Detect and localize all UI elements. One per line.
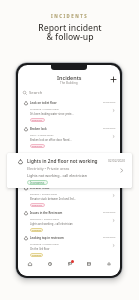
staticText: Elevator stuck between 2nd and 3rd… — [30, 197, 76, 201]
button[interactable]: Home — [20, 261, 39, 272]
staticText: Broken lock on office door. Need… — [30, 138, 72, 142]
staticText: Lights in 2nd floor not working — [30, 158, 74, 162]
staticText: 02/02/2020 — [103, 127, 116, 130]
staticText: 02/02/2020 — [103, 186, 116, 189]
staticText: Electricity • Private areas — [27, 166, 70, 171]
button[interactable]: Issues in the Restroom — [18, 211, 120, 235]
staticText: Reported — [32, 145, 43, 148]
staticText: Search — [29, 90, 43, 96]
staticText: Leak on toilet floor — [30, 101, 57, 105]
staticText: Door • Private areas — [30, 133, 54, 136]
staticText: Reported — [32, 204, 43, 207]
button[interactable]: Leak on toilet floor — [18, 101, 120, 125]
staticText: Leaking tap in restroom — [30, 236, 64, 240]
staticText: Restroom • Private areas — [30, 217, 59, 220]
staticText: Issues in the Restroom — [30, 211, 63, 215]
staticText: Incidents — [57, 74, 82, 81]
staticText: 02/02/2020 — [103, 236, 116, 239]
staticText: Reported — [32, 119, 43, 122]
staticText: The Building — [60, 81, 78, 85]
staticText: Lights not working - call electrician — [30, 169, 73, 173]
button[interactable]: Broken lock — [18, 127, 120, 151]
staticText: Plumbing • Private areas — [30, 107, 59, 110]
staticText: In progress — [32, 176, 45, 179]
staticText: 02/02/2020 — [103, 211, 116, 214]
staticText: 02/02/2020 — [103, 101, 116, 104]
staticText: INCIDENTS — [51, 13, 88, 19]
staticText: In progress — [30, 181, 45, 185]
staticText: Lights not working - call electrician — [27, 173, 87, 178]
staticText: Lights in 2nd floor not working — [27, 158, 98, 164]
button[interactable]: Elevator issue — [18, 186, 120, 210]
button[interactable]: Lights in 2nd floor not working — [7, 153, 132, 188]
staticText: Report incident & follow-up — [38, 22, 102, 43]
button[interactable]: Leaking tap in restroom — [18, 236, 120, 260]
staticText: 02/02/2020 — [103, 158, 116, 161]
button[interactable]: Notifications — [99, 261, 118, 272]
staticText: On the 3rd floor — [30, 247, 50, 251]
button[interactable]: Messages — [79, 261, 98, 272]
staticText: Broken lock — [30, 127, 47, 131]
button[interactable]: Add incident — [108, 74, 119, 85]
staticText: 02/02/2020 — [108, 159, 125, 163]
staticText: Pending — [32, 229, 41, 232]
staticText: Elevator issue — [30, 186, 50, 190]
button[interactable]: Activity — [40, 261, 59, 272]
staticText: Elevator • Private areas — [30, 192, 57, 195]
button[interactable]: Search — [23, 89, 120, 97]
button[interactable]: Lights in 2nd floor not working — [18, 158, 120, 182]
staticText: It's been leaking water since yeste… — [30, 112, 74, 116]
button[interactable]: Incidents — [60, 261, 79, 272]
staticText: Lights and working - call electrician — [30, 222, 73, 226]
staticText: Plumbing • Private areas — [30, 242, 59, 245]
staticText: Pending — [32, 254, 41, 257]
